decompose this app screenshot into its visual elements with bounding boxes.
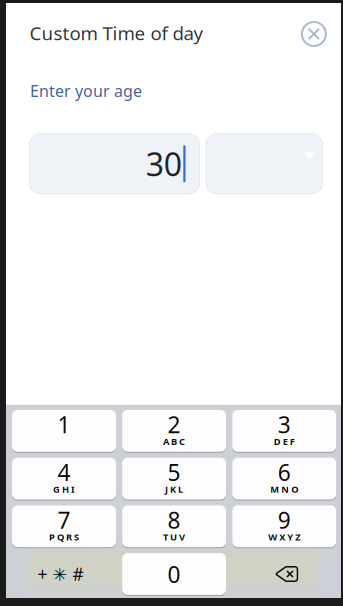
button[interactable]: 3 bbox=[232, 410, 336, 452]
staticText: + ✳ # bbox=[37, 562, 83, 585]
staticText: T U V bbox=[163, 531, 185, 543]
staticText: 5 bbox=[168, 457, 181, 487]
staticText: 0 bbox=[168, 559, 181, 589]
staticText: P Q R S bbox=[49, 531, 79, 543]
button[interactable]: Symbols bbox=[8, 553, 112, 595]
staticText: J K L bbox=[165, 483, 183, 495]
button[interactable]: 0 bbox=[122, 553, 226, 595]
staticText: W X Y Z bbox=[268, 531, 300, 543]
staticText: 30 bbox=[146, 143, 182, 185]
button[interactable]: Close bbox=[302, 22, 326, 46]
button[interactable]: Age bbox=[29, 134, 199, 194]
staticText: A B C bbox=[163, 435, 185, 448]
button[interactable]: 1 bbox=[12, 410, 116, 452]
button[interactable]: 6 bbox=[232, 458, 336, 499]
staticText: 9 bbox=[278, 505, 291, 535]
staticText: 3 bbox=[278, 409, 291, 439]
staticText: 8 bbox=[168, 505, 181, 535]
staticText: D E F bbox=[274, 435, 295, 448]
staticText: Custom Time of day bbox=[30, 21, 204, 45]
button[interactable]: 4 bbox=[12, 458, 116, 499]
staticText: 1 bbox=[57, 409, 70, 439]
button[interactable]: 9 bbox=[232, 505, 336, 547]
button[interactable]: 7 bbox=[12, 505, 116, 547]
staticText: 2 bbox=[168, 409, 181, 439]
button[interactable]: Delete bbox=[235, 553, 339, 595]
button[interactable]: 2 bbox=[122, 410, 226, 452]
staticText: 6 bbox=[278, 457, 291, 487]
button[interactable]: 8 bbox=[122, 505, 226, 547]
staticText: G H I bbox=[53, 483, 75, 495]
staticText: 7 bbox=[57, 505, 70, 535]
staticText: 4 bbox=[57, 457, 70, 487]
staticText: M N O bbox=[270, 483, 298, 495]
button[interactable]: 5 bbox=[122, 458, 226, 499]
staticText: Enter your age bbox=[30, 80, 142, 101]
